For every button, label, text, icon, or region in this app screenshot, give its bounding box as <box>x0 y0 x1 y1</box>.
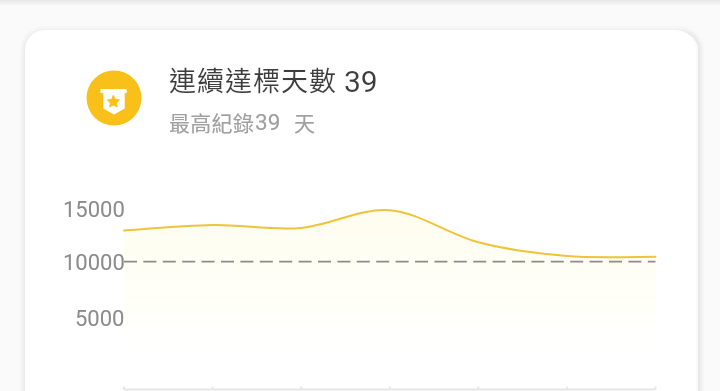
staticText: 15000 <box>63 197 125 223</box>
other: Streak badge <box>86 70 142 126</box>
staticText: 連續達標天數 <box>169 60 337 98</box>
button[interactable]: Streak badge <box>25 40 696 150</box>
staticText: 10000 <box>63 250 125 276</box>
staticText: 天 <box>294 107 315 137</box>
staticText: 5000 <box>75 306 125 332</box>
staticText: 最高紀錄 <box>169 107 255 137</box>
staticText: 39 <box>344 64 378 99</box>
staticText: 39 <box>255 109 281 135</box>
